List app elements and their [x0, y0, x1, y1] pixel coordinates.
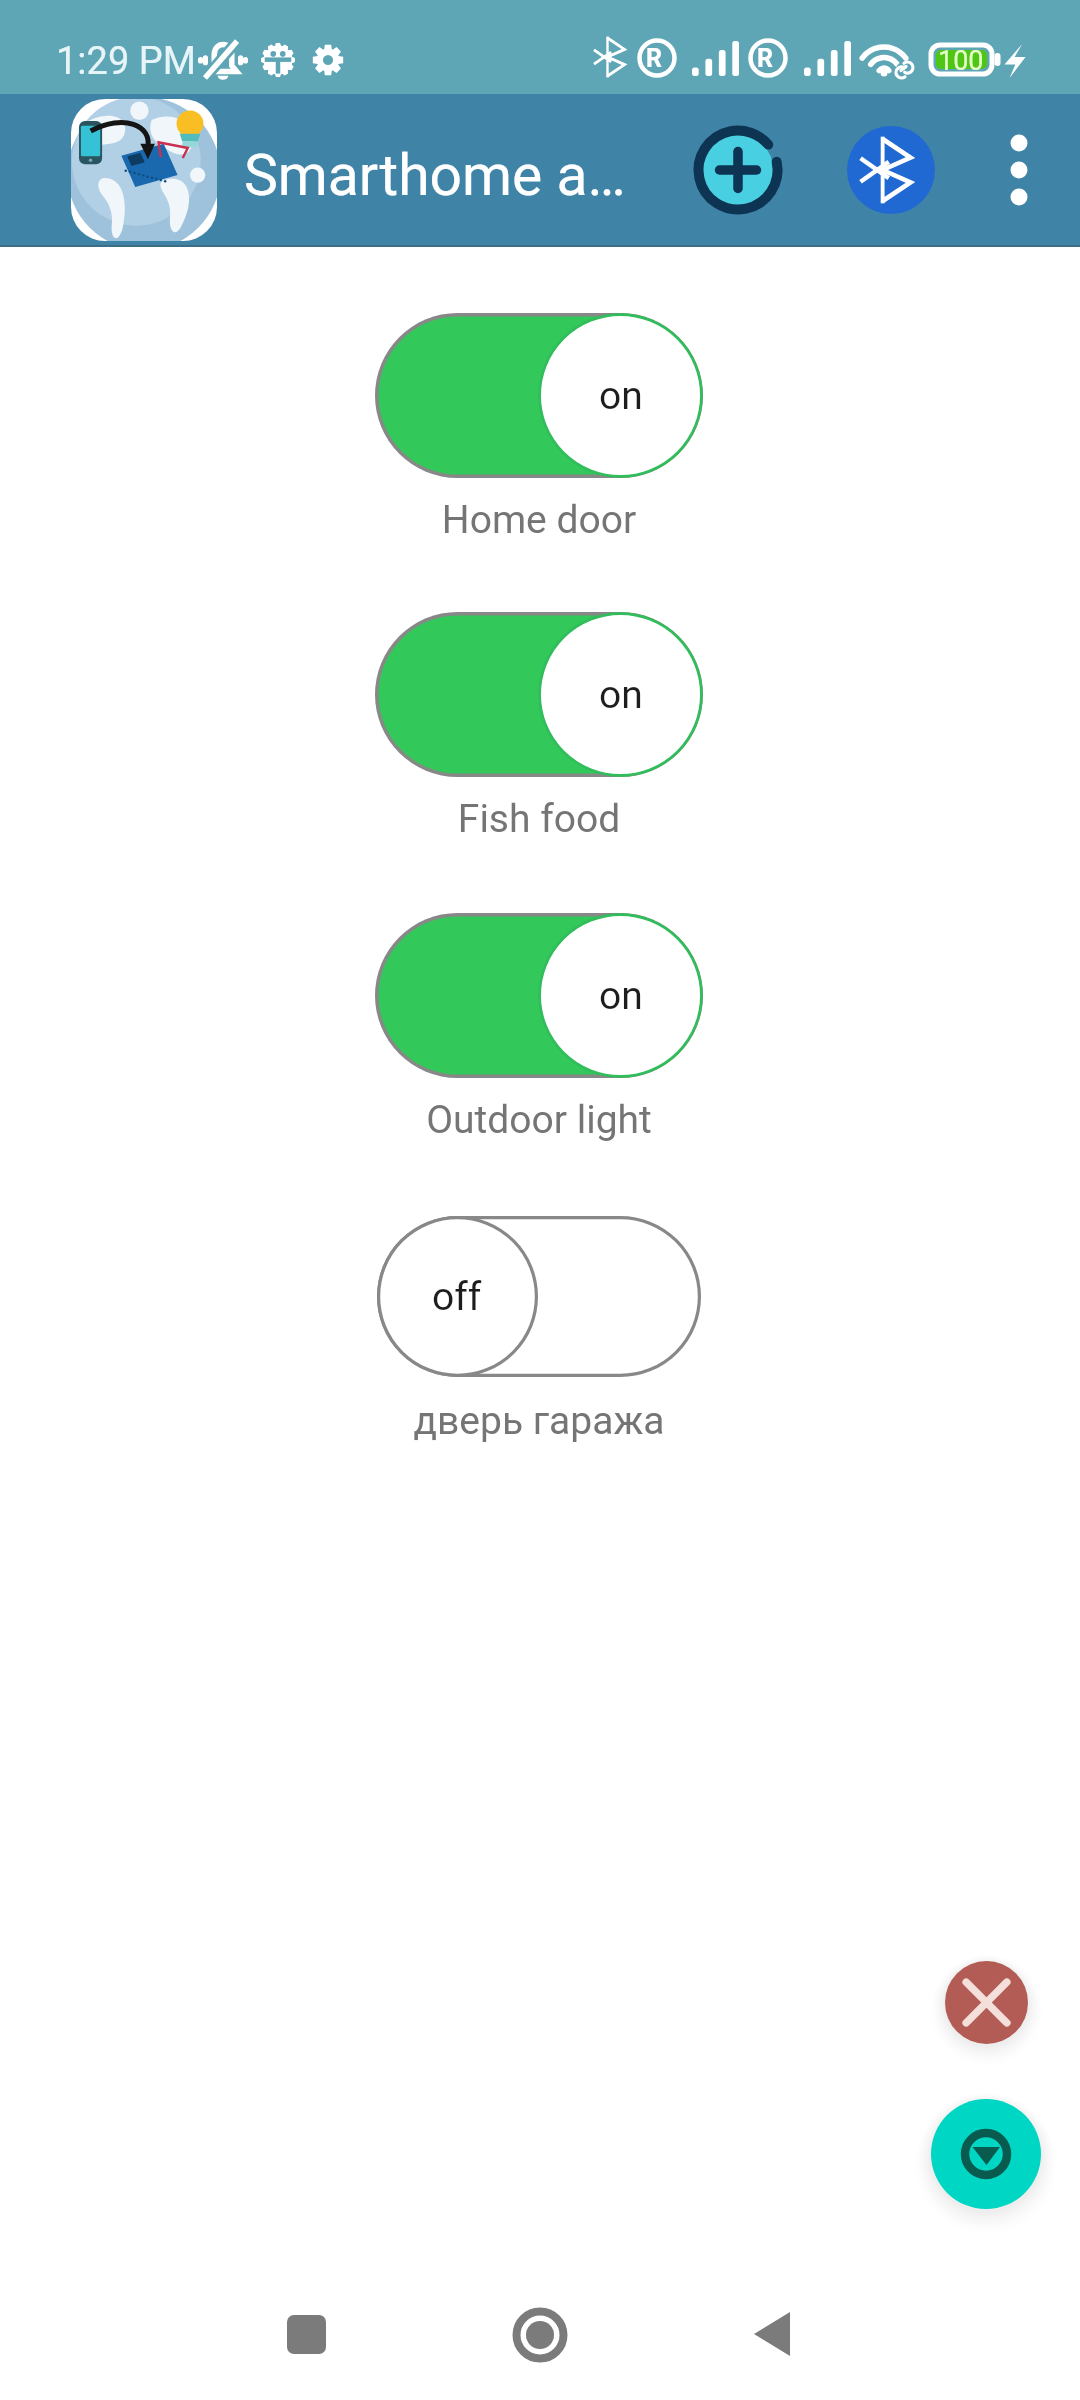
button[interactable]: Back — [712, 2274, 832, 2394]
staticText: on — [599, 373, 643, 419]
button[interactable]: Add device — [686, 118, 790, 222]
button[interactable]: off — [375, 1214, 703, 1454]
button[interactable]: Download data — [931, 2099, 1041, 2209]
button[interactable]: Home — [480, 2275, 600, 2395]
staticText: Home door — [375, 497, 703, 543]
button[interactable]: Smarthome app icon — [71, 99, 217, 241]
staticText: R — [757, 44, 773, 73]
button[interactable]: Disconnect — [945, 1961, 1028, 2044]
staticText: on — [599, 672, 643, 718]
staticText: 1:29 PM — [56, 39, 196, 84]
button[interactable]: on — [375, 913, 703, 1153]
staticText: on — [599, 973, 643, 1019]
button[interactable]: More options — [969, 120, 1069, 220]
staticText: 100 — [938, 45, 984, 77]
button[interactable]: Bluetooth — [839, 118, 943, 222]
staticText: дверь гаража — [375, 1398, 703, 1444]
button[interactable]: on — [375, 313, 703, 553]
staticText: R — [646, 44, 662, 73]
staticText: off — [432, 1274, 482, 1320]
button[interactable]: on — [375, 612, 703, 852]
staticText: Fish food — [375, 796, 703, 842]
button[interactable]: Recents — [246, 2274, 366, 2394]
staticText: Smarthome a… — [244, 142, 626, 209]
staticText: Outdoor light — [375, 1097, 703, 1143]
